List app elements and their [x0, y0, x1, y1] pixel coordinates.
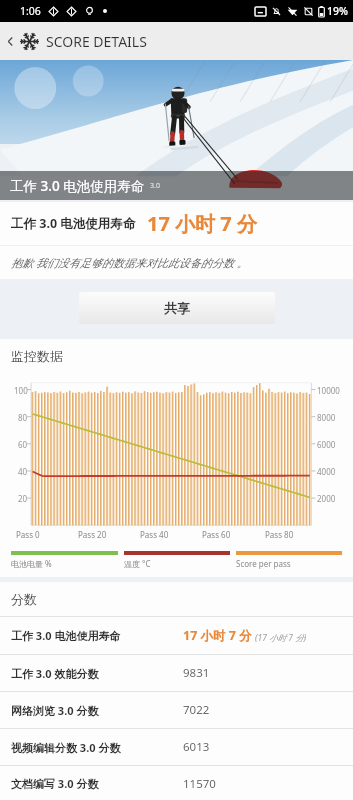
- button[interactable]: 共享: [79, 292, 275, 324]
- staticText: 8000: [317, 412, 336, 423]
- staticText: 工作 3.0 电池使用寿命: [10, 177, 145, 195]
- staticText: 60: [18, 439, 28, 450]
- staticText: 工作 3.0 效能分数: [11, 666, 99, 681]
- button[interactable]: 视频编辑分数 3.0 分数: [0, 729, 353, 765]
- staticText: 40: [18, 466, 28, 477]
- staticText: 视频编辑分数 3.0 分数: [11, 740, 121, 755]
- staticText: Pass 40: [140, 529, 169, 540]
- staticText: 9831: [183, 665, 210, 681]
- staticText: 17 小时 7 分: [183, 627, 252, 644]
- staticText: 工作 3.0 电池使用寿命: [11, 215, 136, 232]
- staticText: Score per pass: [236, 558, 291, 569]
- button[interactable]: Back: [0, 22, 20, 60]
- staticText: SCORE DETAILS: [46, 32, 147, 51]
- staticText: 电池电量 %: [11, 558, 52, 569]
- staticText: 监控数据: [11, 348, 63, 364]
- staticText: 17 小时 7 分: [147, 210, 257, 237]
- staticText: 6013: [183, 739, 210, 755]
- staticText: 20: [18, 493, 28, 504]
- staticText: 网络浏览 3.0 分数: [11, 703, 99, 718]
- staticText: 10000: [317, 385, 340, 396]
- staticText: 温度 °C: [124, 558, 151, 569]
- staticText: 7022: [183, 702, 210, 718]
- staticText: 3.0: [150, 181, 160, 191]
- staticText: 2000: [317, 493, 336, 504]
- staticText: 1:06: [20, 4, 41, 18]
- staticText: Pass 0: [16, 529, 40, 540]
- staticText: 11570: [183, 776, 216, 790]
- staticText: Pass 60: [202, 529, 231, 540]
- staticText: 抱歉 我们没有足够的数据来对比此设备的分数 。: [11, 255, 248, 270]
- staticText: 文档编写 3.0 分数: [11, 776, 99, 790]
- staticText: 4000: [317, 466, 336, 477]
- button[interactable]: 文档编写 3.0 分数: [0, 766, 353, 800]
- button[interactable]: 网络浏览 3.0 分数: [0, 692, 353, 728]
- staticText: Pass 80: [265, 529, 294, 540]
- button[interactable]: 工作 3.0 电池使用寿命: [0, 617, 353, 654]
- staticText: 19%: [327, 4, 348, 18]
- staticText: 6000: [317, 439, 336, 450]
- staticText: 工作 3.0 电池使用寿命: [11, 628, 121, 643]
- staticText: 共享: [164, 300, 190, 316]
- staticText: Pass 20: [78, 529, 107, 540]
- staticText: (17 小时 7 分): [255, 632, 307, 644]
- button[interactable]: 工作 3.0 效能分数: [0, 655, 353, 691]
- staticText: 80: [18, 412, 28, 423]
- staticText: 分数: [11, 591, 37, 607]
- staticText: 100: [14, 385, 28, 396]
